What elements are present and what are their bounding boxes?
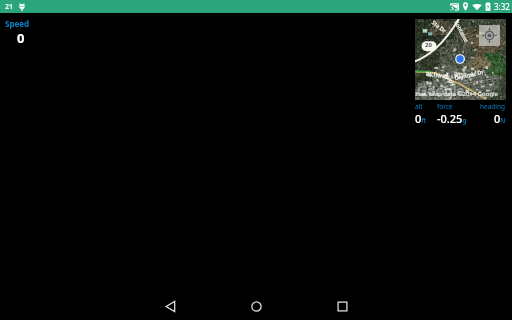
button[interactable]: Back xyxy=(127,292,213,320)
staticText: 0 xyxy=(17,29,25,47)
staticText: dsat, Map data ©2014 Google xyxy=(415,90,499,98)
button[interactable]: Map xyxy=(415,19,506,100)
button[interactable]: Home xyxy=(213,292,299,320)
button[interactable]: My location xyxy=(479,25,500,46)
staticText: Olympic Dr xyxy=(454,68,484,81)
staticText: Richway xyxy=(426,70,449,79)
staticText: 0N xyxy=(494,111,506,126)
staticText: heading xyxy=(480,102,506,111)
button[interactable]: heading xyxy=(477,102,506,126)
staticText: Google xyxy=(417,81,465,100)
staticText: 21 xyxy=(5,2,14,12)
staticText: alt xyxy=(415,102,423,111)
staticText: 20 xyxy=(425,41,432,49)
button[interactable]: Recents xyxy=(299,292,385,320)
staticText: Pkwy xyxy=(443,71,458,87)
staticText: Sta Dr xyxy=(431,19,448,34)
button[interactable]: alt xyxy=(415,102,437,126)
staticText: force xyxy=(437,102,453,111)
button[interactable]: Speed xyxy=(5,18,37,47)
staticText: Fontaine xyxy=(453,19,471,44)
staticText: 0ft xyxy=(415,111,427,126)
button[interactable]: force xyxy=(437,102,477,126)
staticText: -0.25g xyxy=(437,111,467,126)
staticText: 3:32 xyxy=(494,1,510,12)
staticText: Speed xyxy=(5,18,30,29)
